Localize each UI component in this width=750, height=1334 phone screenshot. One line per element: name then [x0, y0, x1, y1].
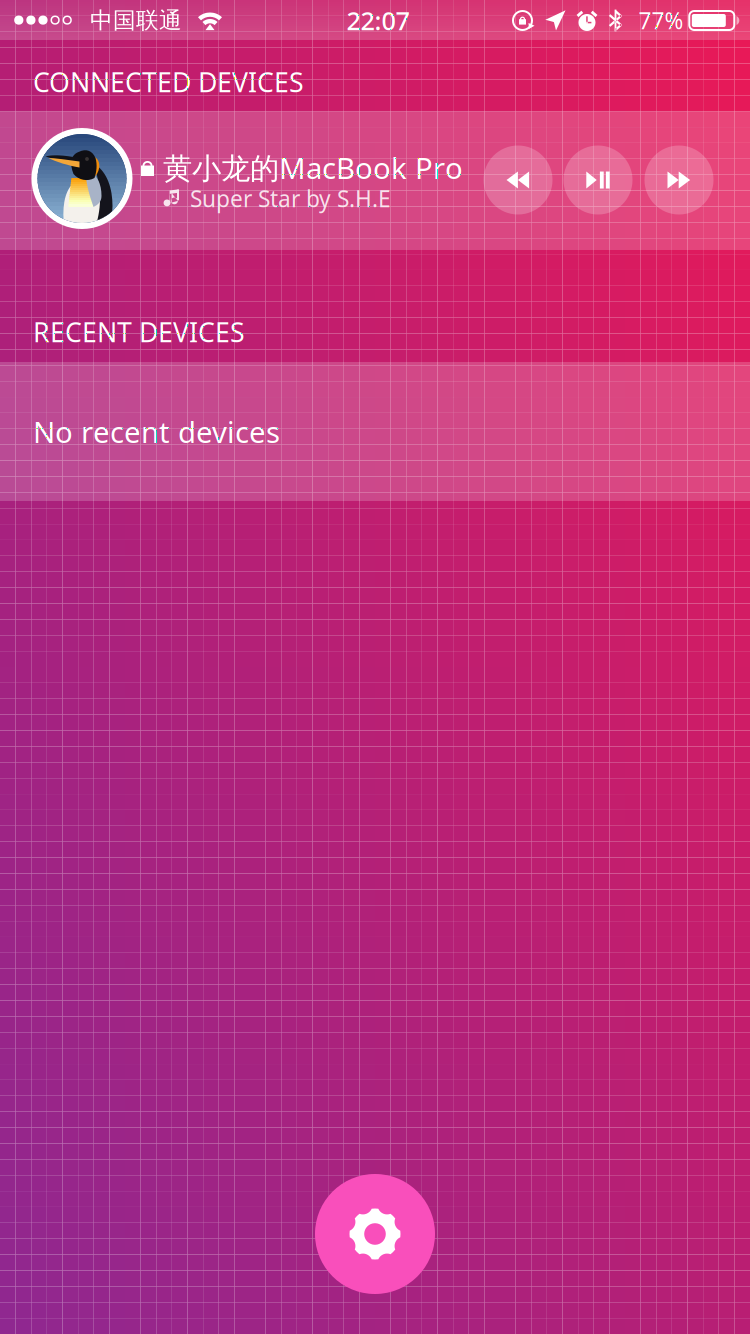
staticText: RECENT DEVICES: [33, 314, 245, 350]
staticText: 77%: [638, 5, 683, 35]
button[interactable]: Rewind: [483, 145, 552, 214]
staticText: No recent devices: [33, 412, 280, 451]
button[interactable]: Settings: [315, 1174, 435, 1294]
staticText: 黄小龙的MacBook Pro: [163, 148, 463, 187]
button[interactable]: [0, 111, 750, 250]
button[interactable]: Fast forward: [644, 145, 713, 214]
staticText: 22:07: [346, 4, 409, 37]
staticText: 中国联通: [90, 7, 182, 34]
staticText: CONNECTED DEVICES: [33, 64, 304, 100]
button[interactable]: No recent devices: [0, 362, 750, 501]
staticText: Super Star by S.H.E: [190, 183, 391, 213]
button[interactable]: Play or pause: [563, 145, 632, 214]
